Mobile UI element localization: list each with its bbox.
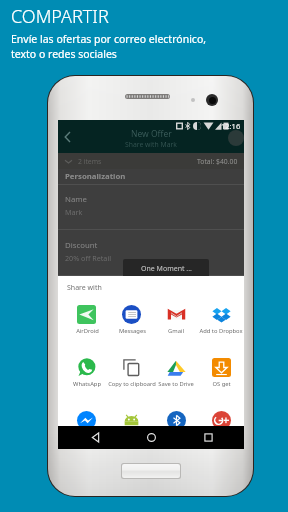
staticText: Total: $40.00 (197, 157, 238, 166)
staticText: Google+ (210, 433, 233, 441)
staticText: texto o redes sociales (11, 47, 117, 61)
button[interactable] (199, 300, 244, 353)
staticText: Messages (119, 327, 146, 335)
staticText: Gmail (168, 327, 184, 335)
staticText: Share with Mark (125, 140, 177, 149)
staticText: Add to Dropbox (199, 327, 243, 335)
staticText: Envíe las ofertas por correo electrónico… (11, 32, 207, 46)
staticText: Discount (65, 240, 98, 251)
button[interactable]: Back (75, 426, 115, 449)
button[interactable]: Recent apps (188, 426, 228, 449)
button[interactable]: Home (131, 426, 171, 449)
button[interactable] (109, 300, 154, 353)
button[interactable] (154, 300, 199, 353)
staticText: 20% off Retail (65, 253, 112, 263)
staticText: WhatsApp (73, 380, 101, 388)
staticText: Mark (65, 207, 83, 217)
staticText: 12:16 (221, 121, 241, 130)
staticText: 2 items (78, 157, 102, 166)
button[interactable] (199, 353, 244, 406)
staticText: OS get (212, 380, 231, 388)
staticText: Save to Drive (158, 380, 194, 388)
staticText: Share with (67, 283, 102, 293)
button[interactable] (65, 406, 110, 449)
staticText: COMPARTIR (11, 4, 109, 29)
button[interactable] (65, 300, 110, 353)
button[interactable] (109, 406, 154, 449)
staticText: AirDroid (76, 327, 99, 335)
button[interactable] (154, 353, 199, 406)
button[interactable] (109, 353, 154, 406)
staticText: New Offer (131, 128, 172, 140)
button[interactable] (199, 406, 244, 449)
staticText: Android Beam (113, 433, 152, 441)
staticText: Name (65, 194, 87, 205)
button[interactable] (65, 353, 110, 406)
staticText: Messenger (72, 433, 103, 441)
staticText: Personalization (65, 171, 126, 182)
staticText: Copy to clipboard (108, 380, 156, 388)
staticText: One Moment ... (141, 264, 192, 274)
button[interactable] (154, 406, 199, 449)
